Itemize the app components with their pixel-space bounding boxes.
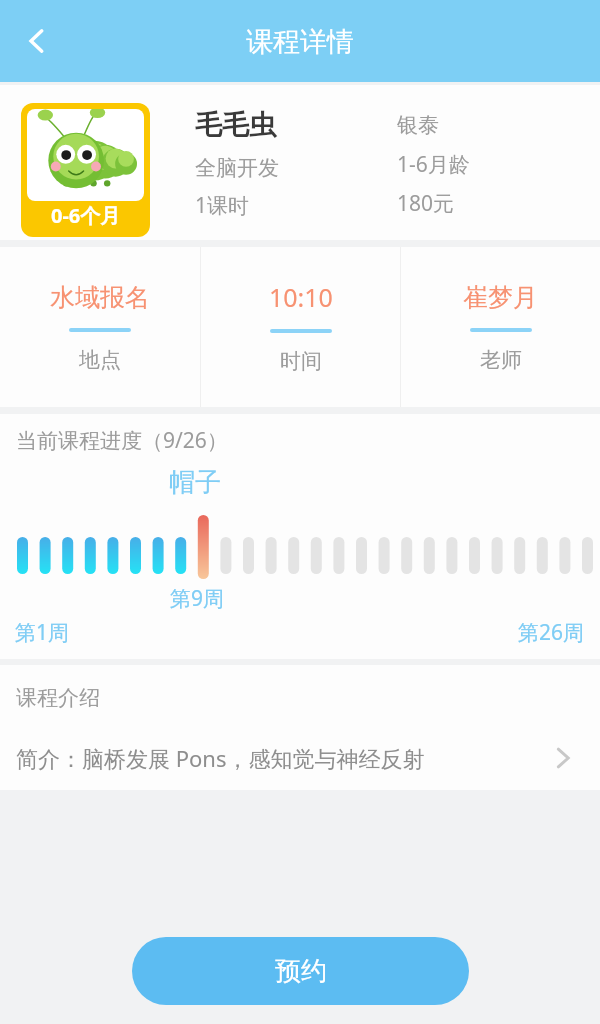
staticText: 地点 [79,347,121,373]
staticText: 预约 [275,955,327,988]
staticText: 帽子 [169,466,221,499]
button[interactable]: 崔梦月 [401,247,600,407]
button[interactable]: 预约 [132,937,469,1005]
staticText: 1-6月龄 [397,150,470,179]
staticText: 课程介绍 [16,685,100,711]
staticText: 崔梦月 [463,282,538,313]
button[interactable]: 简介：脑桥发展 Pons，感知觉与神经反射 [0,733,600,783]
button[interactable]: 10:10 [201,247,400,407]
staticText: 第1周 [15,618,70,647]
staticText: 简介：脑桥发展 Pons，感知觉与神经反射 [16,743,550,773]
staticText: 毛毛虫 [195,108,276,142]
button[interactable]: 0-6个月 [21,103,150,237]
button[interactable]: Back [8,12,66,70]
staticText: 0-6个月 [51,202,121,229]
staticText: 水域报名 [50,282,150,313]
button[interactable]: 水域报名 [0,247,200,407]
staticText: 1课时 [195,191,250,220]
staticText: 第9周 [170,584,225,613]
staticText: 时间 [280,348,322,374]
staticText: 180元 [397,189,455,218]
staticText: 课程详情 [246,25,354,59]
staticText: 10:10 [269,280,333,314]
staticText: 银泰 [397,112,439,138]
staticText: 老师 [480,347,522,373]
staticText: 第26周 [518,618,585,647]
staticText: 当前课程进度（9/26） [16,426,228,455]
staticText: 全脑开发 [195,155,279,181]
